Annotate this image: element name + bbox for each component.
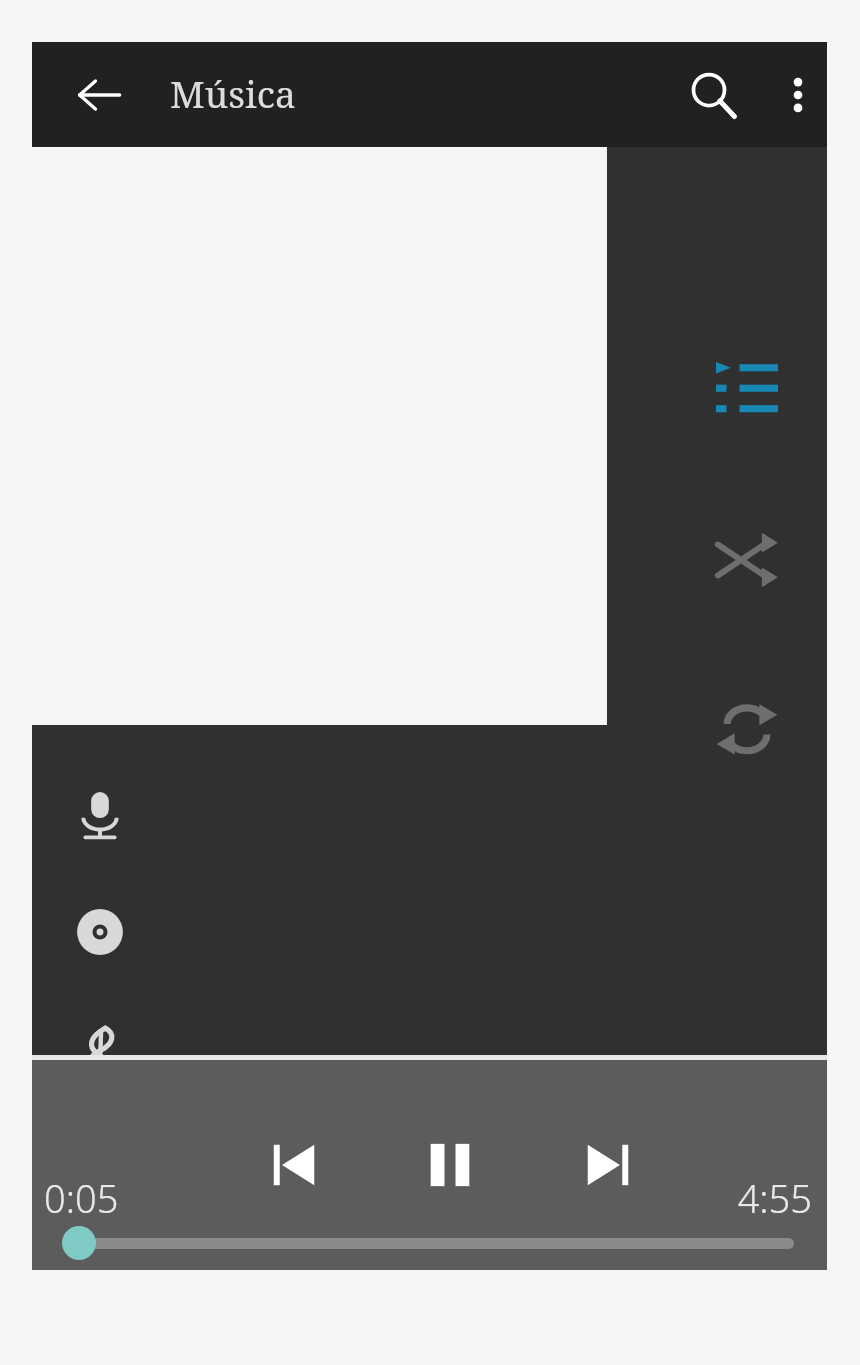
- staticText: 0:05: [44, 1172, 119, 1224]
- button[interactable]: Track: [56, 997, 796, 1101]
- button[interactable]: Repeat: [689, 671, 805, 787]
- button[interactable]: Search: [672, 54, 754, 136]
- button[interactable]: Artist: [56, 763, 796, 867]
- button[interactable]: Album: [56, 880, 796, 984]
- button[interactable]: Seek bar: [46, 1220, 802, 1266]
- button[interactable]: Shuffle: [689, 502, 805, 618]
- button[interactable]: Previous: [244, 1115, 344, 1215]
- button[interactable]: Play queue: [689, 331, 805, 447]
- staticText: 4:55: [632, 1172, 812, 1224]
- button[interactable]: Pause: [400, 1115, 500, 1215]
- button[interactable]: More options: [767, 64, 829, 126]
- button[interactable]: Back: [60, 56, 138, 134]
- staticText: Música: [170, 68, 296, 118]
- button[interactable]: Next: [558, 1115, 658, 1215]
